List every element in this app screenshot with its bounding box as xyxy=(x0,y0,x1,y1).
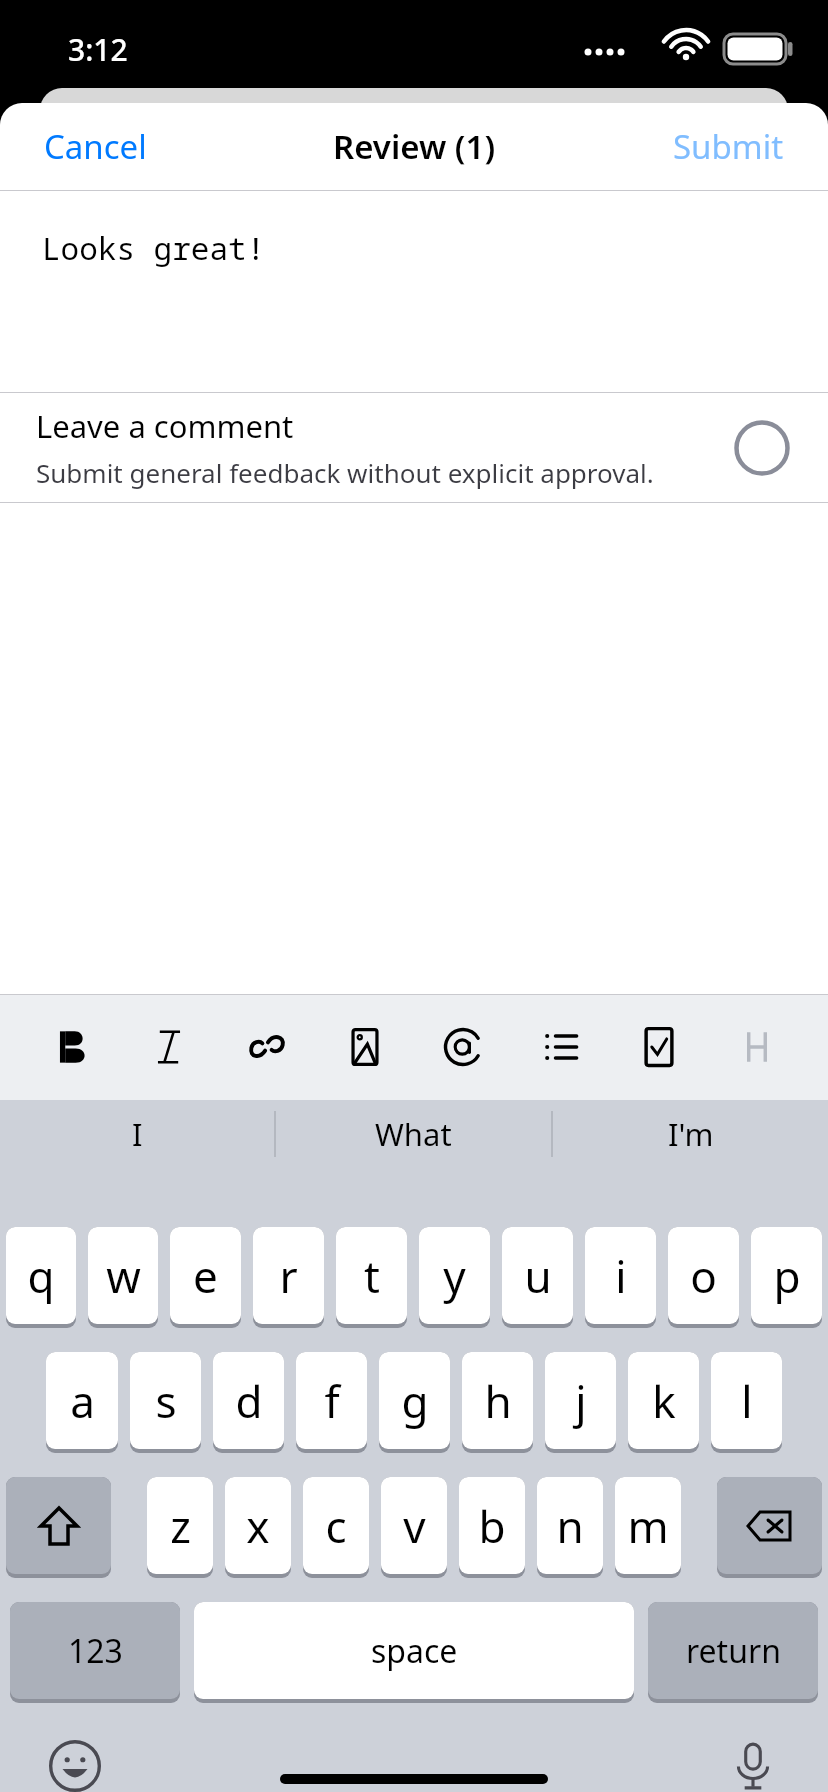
staticText: o xyxy=(690,1246,717,1306)
staticText: Review (1) xyxy=(333,124,496,169)
button[interactable]: 123 xyxy=(10,1602,180,1699)
staticText: I'm xyxy=(668,1113,714,1155)
button[interactable]: n xyxy=(537,1477,603,1574)
button[interactable]: e xyxy=(170,1227,241,1324)
button[interactable]: r xyxy=(253,1227,324,1324)
button[interactable]: return xyxy=(648,1602,818,1699)
staticText: return xyxy=(686,1629,781,1673)
staticText: Cancel xyxy=(44,124,147,169)
staticText: r xyxy=(279,1246,298,1306)
button[interactable]: d xyxy=(213,1352,284,1449)
button[interactable]: Shift xyxy=(6,1477,111,1574)
staticText: a xyxy=(70,1371,95,1431)
button[interactable]: I xyxy=(0,1100,274,1168)
button[interactable]: Bulleted list xyxy=(530,1009,592,1085)
button[interactable]: Submit xyxy=(629,108,828,185)
staticText: f xyxy=(324,1371,340,1431)
button[interactable]: q xyxy=(6,1227,76,1324)
button[interactable]: y xyxy=(419,1227,490,1324)
button[interactable]: Backspace xyxy=(717,1477,822,1574)
staticText: v xyxy=(403,1496,426,1556)
staticText: s xyxy=(155,1371,177,1431)
staticText: space xyxy=(371,1629,458,1673)
button[interactable]: v xyxy=(381,1477,447,1574)
staticText: l xyxy=(741,1371,753,1431)
staticText: z xyxy=(170,1496,191,1556)
button[interactable]: Bold xyxy=(40,1009,102,1085)
button[interactable]: o xyxy=(668,1227,739,1324)
button[interactable]: Emoji xyxy=(40,1739,110,1792)
staticText: t xyxy=(364,1246,380,1306)
staticText: Looks great! xyxy=(42,227,266,269)
button[interactable]: Heading xyxy=(726,1009,788,1085)
staticText: n xyxy=(556,1496,584,1556)
button[interactable]: c xyxy=(303,1477,369,1574)
button[interactable]: i xyxy=(585,1227,656,1324)
button[interactable]: a xyxy=(46,1352,118,1449)
staticText: d xyxy=(235,1371,263,1431)
button[interactable]: j xyxy=(545,1352,616,1449)
button[interactable]: g xyxy=(379,1352,450,1449)
button[interactable]: x xyxy=(225,1477,291,1574)
staticText: k xyxy=(652,1371,676,1431)
button[interactable]: t xyxy=(336,1227,407,1324)
staticText: e xyxy=(193,1246,218,1306)
button[interactable]: w xyxy=(88,1227,158,1324)
button[interactable]: Insert image xyxy=(334,1009,396,1085)
button[interactable]: b xyxy=(459,1477,525,1574)
button[interactable]: l xyxy=(711,1352,782,1449)
button[interactable]: m xyxy=(615,1477,681,1574)
button[interactable]: Insert link xyxy=(236,1009,298,1085)
button[interactable]: s xyxy=(130,1352,201,1449)
staticText: 3:12 xyxy=(68,29,128,70)
button[interactable]: k xyxy=(628,1352,699,1449)
staticText: Submit xyxy=(673,124,784,169)
staticText: u xyxy=(524,1246,552,1306)
button[interactable]: f xyxy=(296,1352,367,1449)
staticText: w xyxy=(106,1246,141,1306)
button[interactable]: Task list xyxy=(628,1009,690,1085)
staticText: b xyxy=(478,1496,506,1556)
button[interactable]: space xyxy=(194,1602,634,1699)
staticText: c xyxy=(325,1496,347,1556)
button[interactable]: h xyxy=(462,1352,533,1449)
staticText: q xyxy=(27,1246,55,1306)
staticText: m xyxy=(627,1496,669,1556)
staticText: Leave a comment xyxy=(36,405,294,447)
button[interactable]: Looks great! xyxy=(0,191,828,392)
button[interactable]: What xyxy=(276,1100,551,1168)
button[interactable]: z xyxy=(147,1477,213,1574)
staticText: h xyxy=(484,1371,512,1431)
staticText: x xyxy=(246,1496,270,1556)
button[interactable]: Leave a comment xyxy=(0,393,828,502)
staticText: Submit general feedback without explicit… xyxy=(36,455,654,490)
staticText: I xyxy=(132,1113,143,1155)
staticText: p xyxy=(773,1246,801,1306)
staticText: y xyxy=(443,1246,466,1306)
staticText: i xyxy=(615,1246,627,1306)
button[interactable]: I'm xyxy=(553,1100,828,1168)
staticText: g xyxy=(401,1371,429,1431)
staticText: 123 xyxy=(68,1629,123,1673)
staticText: j xyxy=(575,1371,587,1431)
button[interactable]: p xyxy=(751,1227,822,1324)
button[interactable]: Cancel xyxy=(0,108,191,185)
button[interactable]: Mention xyxy=(432,1009,494,1085)
button[interactable]: Dictation xyxy=(718,1739,788,1792)
button[interactable]: u xyxy=(502,1227,573,1324)
button[interactable]: Italic xyxy=(138,1009,200,1085)
staticText: What xyxy=(375,1113,452,1155)
